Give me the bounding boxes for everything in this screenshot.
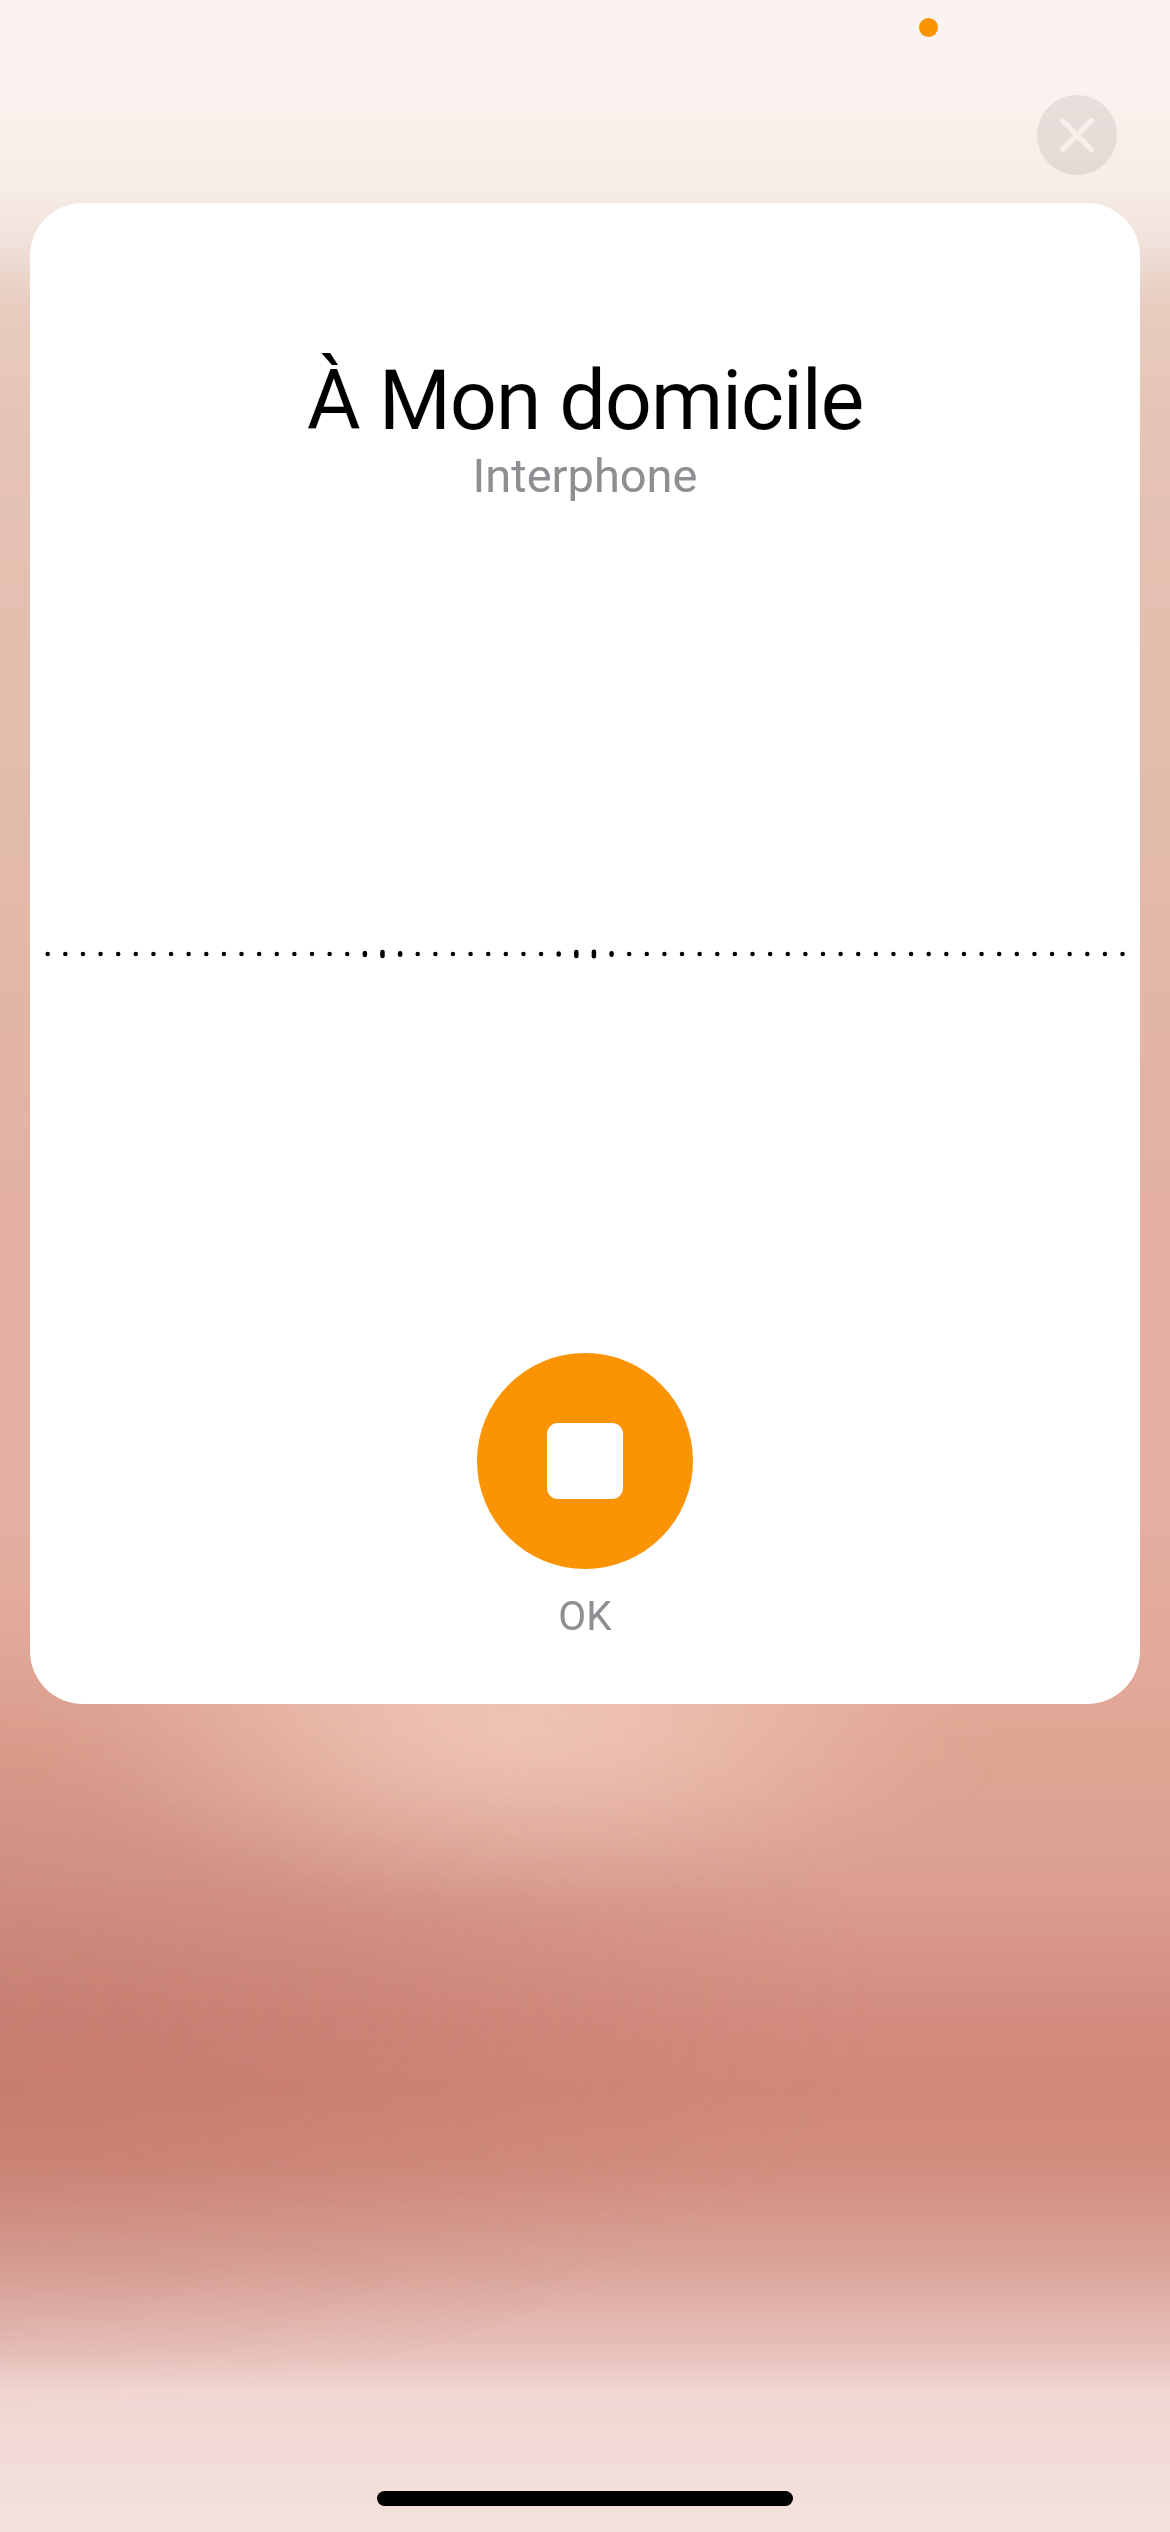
staticText: Interphone xyxy=(30,448,1140,503)
staticText: À Mon domicile xyxy=(30,352,1140,449)
staticText: OK xyxy=(30,1592,1140,1639)
button[interactable]: Stop xyxy=(477,1353,693,1569)
button[interactable]: Close xyxy=(1037,95,1117,175)
